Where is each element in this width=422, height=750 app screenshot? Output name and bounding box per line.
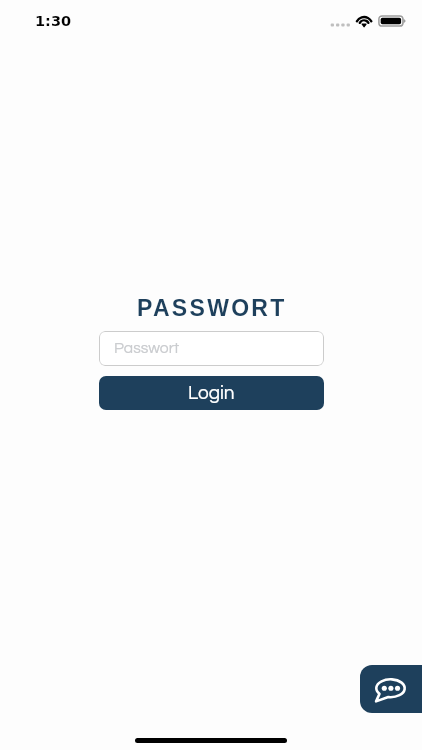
staticText: 1:30 [35, 13, 72, 30]
button[interactable]: Chat [360, 665, 422, 713]
button[interactable]: Passwort [99, 331, 324, 366]
staticText: Login [188, 383, 235, 403]
staticText: Passwort [114, 340, 180, 356]
staticText: PASSWORT [137, 295, 287, 321]
button[interactable]: Login [99, 376, 324, 410]
